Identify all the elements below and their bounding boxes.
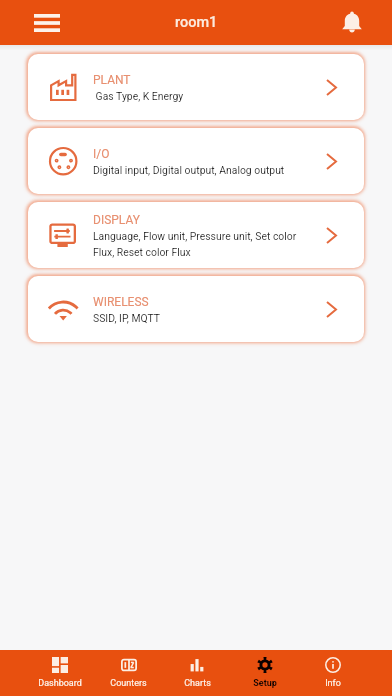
button[interactable]: I/O — [28, 128, 364, 194]
staticText: Charts — [184, 678, 211, 689]
button[interactable]: Charts — [163, 650, 231, 696]
staticText: WIRELESS — [93, 295, 149, 309]
staticText: Digital input, Digital output, Analog ou… — [93, 164, 285, 176]
staticText: Info — [325, 678, 341, 689]
staticText: Gas Type, K Energy — [93, 90, 184, 102]
staticText: Counters — [110, 678, 147, 689]
button[interactable]: WIRELESS — [28, 276, 364, 342]
staticText: Language, Flow unit, Pressure unit, Set … — [93, 230, 297, 242]
staticText: Dashboard — [38, 678, 82, 689]
button[interactable]: Setup — [231, 650, 299, 696]
button[interactable]: Open navigation menu — [26, 2, 68, 44]
button[interactable]: Notifications — [331, 2, 373, 44]
staticText: Flux, Reset color Flux — [93, 246, 191, 258]
button[interactable]: Dashboard — [25, 650, 94, 696]
staticText: Setup — [253, 678, 277, 689]
button[interactable]: Info — [299, 650, 367, 696]
staticText: room1 — [175, 14, 218, 31]
staticText: SSID, IP, MQTT — [93, 312, 160, 324]
button[interactable]: Counters — [94, 650, 163, 696]
staticText: DISPLAY — [93, 213, 140, 227]
button[interactable]: PLANT — [28, 54, 364, 120]
staticText: PLANT — [93, 73, 131, 87]
staticText: I/O — [93, 147, 110, 161]
button[interactable]: DISPLAY — [28, 202, 364, 268]
